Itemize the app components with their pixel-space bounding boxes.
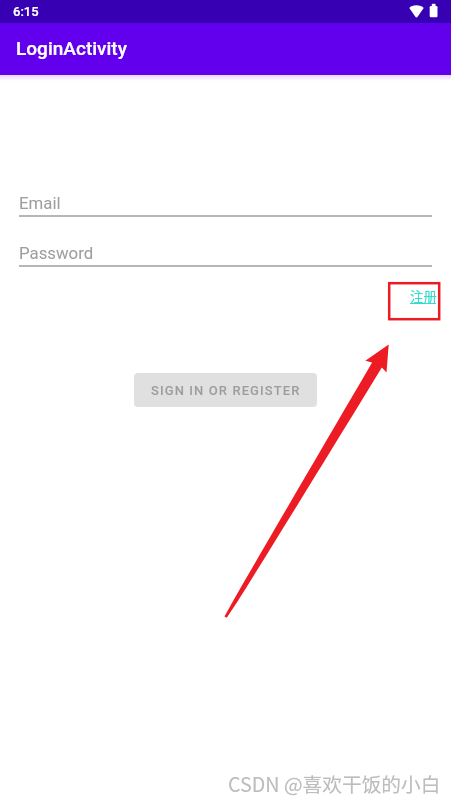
staticText: LoginActivity bbox=[16, 37, 127, 59]
staticText: SIGN IN OR REGISTER bbox=[151, 383, 301, 398]
button[interactable]: SIGN IN OR REGISTER bbox=[134, 373, 317, 407]
staticText: 6:15 bbox=[13, 4, 39, 19]
staticText: Password bbox=[19, 243, 94, 263]
staticText: 注册 bbox=[410, 286, 437, 305]
staticText: CSDN @喜欢干饭的小白 bbox=[228, 769, 441, 798]
other: Wi-Fi and battery status bbox=[405, 0, 445, 23]
button[interactable]: Password bbox=[19, 238, 432, 266]
button[interactable]: Email bbox=[19, 188, 432, 216]
staticText: Email bbox=[19, 193, 61, 213]
button[interactable]: 注册 bbox=[398, 284, 438, 316]
